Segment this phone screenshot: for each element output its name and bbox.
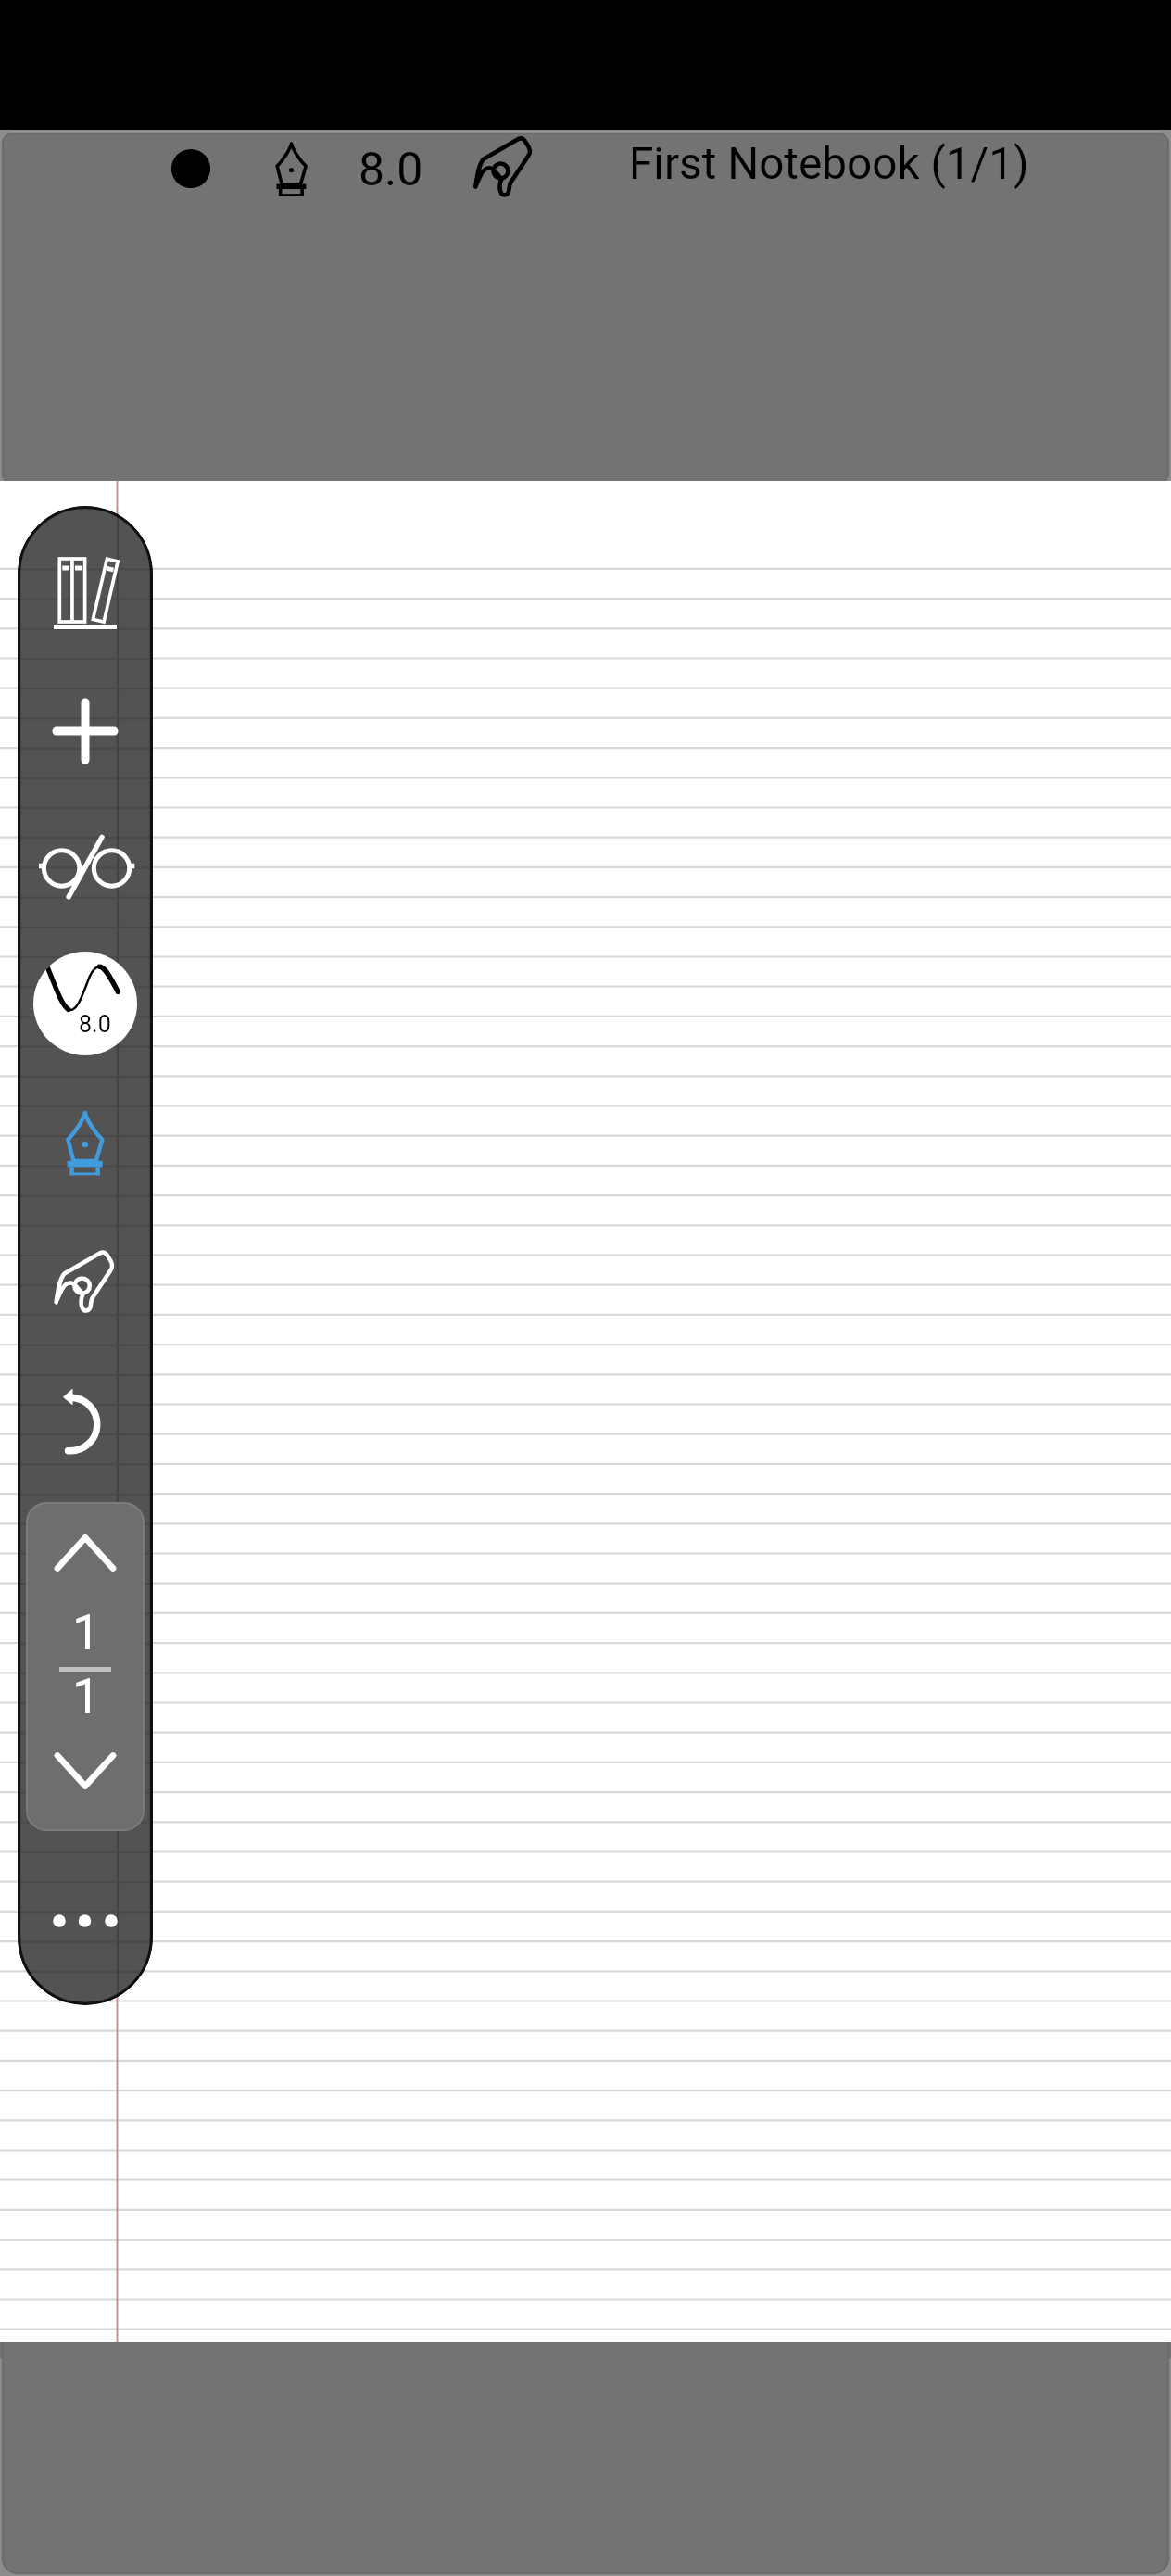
button[interactable]: More options — [47, 1893, 125, 1949]
button[interactable]: Pen — [271, 140, 314, 203]
button[interactable]: Pen tool — [61, 1108, 112, 1182]
button[interactable]: Current colour — [170, 148, 211, 189]
button[interactable]: Touch mode — [467, 133, 541, 203]
button[interactable]: Add page — [42, 694, 129, 768]
button[interactable]: Previous page — [46, 1529, 124, 1577]
button[interactable]: Library — [54, 557, 117, 631]
staticText: 8.0 — [359, 143, 423, 197]
button[interactable]: Undo — [55, 1386, 105, 1460]
button[interactable]: Cut — [38, 830, 136, 904]
staticText: 1 — [72, 1604, 100, 1661]
staticText: First Notebook (1/1) — [629, 138, 1029, 190]
staticText: 1 — [72, 1668, 100, 1725]
button[interactable]: Touch mode — [47, 1247, 121, 1317]
staticText: 8.0 — [79, 1011, 111, 1038]
button[interactable]: Next page — [46, 1747, 124, 1795]
button[interactable]: Stroke width 8.0 — [33, 952, 137, 1055]
